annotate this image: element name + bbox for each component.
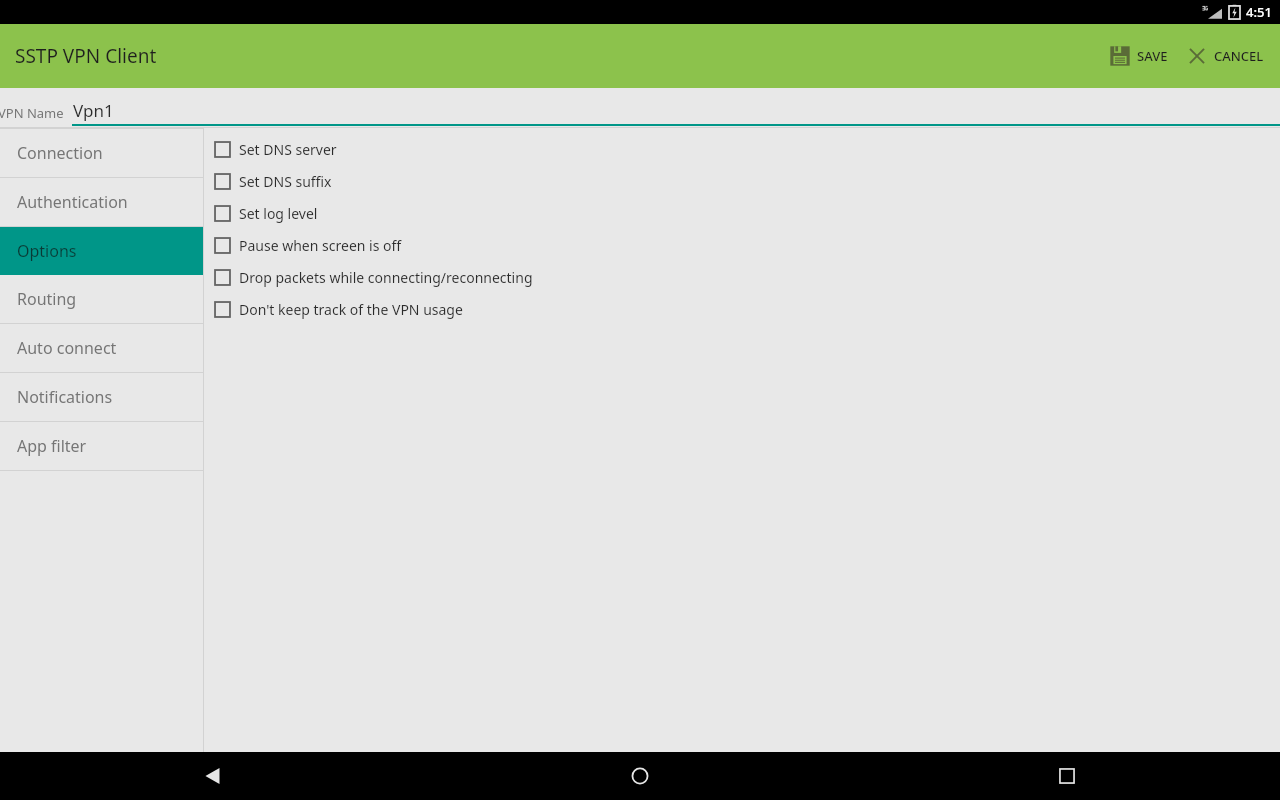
- button[interactable]: Set DNS suffix: [214, 165, 332, 197]
- staticText: CANCEL: [1214, 47, 1264, 65]
- button[interactable]: Home: [616, 752, 664, 800]
- button[interactable]: Don't keep track of the VPN usage: [214, 293, 463, 325]
- button[interactable]: Auto connect: [0, 324, 203, 372]
- staticText: VPN Name: [0, 104, 64, 122]
- staticText: Pause when screen is off: [239, 236, 402, 255]
- staticText: Routing: [17, 288, 77, 310]
- staticText: Options: [17, 240, 77, 262]
- button[interactable]: Back: [189, 752, 237, 800]
- button[interactable]: Set log level: [214, 197, 318, 229]
- staticText: Set DNS server: [239, 140, 337, 159]
- staticText: Auto connect: [17, 337, 117, 359]
- button[interactable]: Drop packets while connecting/reconnecti…: [214, 261, 533, 293]
- staticText: SAVE: [1137, 47, 1168, 65]
- button[interactable]: Save: [1101, 37, 1176, 75]
- button[interactable]: Recent apps: [1043, 752, 1091, 800]
- staticText: SSTP VPN Client: [15, 43, 157, 69]
- staticText: Set DNS suffix: [239, 172, 332, 191]
- button[interactable]: Notifications: [0, 373, 203, 421]
- staticText: Set log level: [239, 204, 318, 223]
- staticText: Notifications: [17, 386, 113, 408]
- button[interactable]: Cancel: [1178, 37, 1272, 75]
- staticText: Don't keep track of the VPN usage: [239, 300, 463, 319]
- button[interactable]: Routing: [0, 275, 203, 323]
- other: Save: [1109, 45, 1131, 67]
- staticText: Drop packets while connecting/reconnecti…: [239, 268, 533, 287]
- staticText: 4:51: [1246, 3, 1272, 21]
- staticText: Vpn1: [73, 99, 114, 122]
- staticText: Connection: [17, 142, 103, 164]
- button[interactable]: Options: [0, 227, 203, 275]
- staticText: Authentication: [17, 191, 128, 213]
- button[interactable]: Set DNS server: [214, 133, 337, 165]
- staticText: App filter: [17, 435, 87, 457]
- button[interactable]: Connection: [0, 129, 203, 177]
- button[interactable]: App filter: [0, 422, 203, 470]
- button[interactable]: Pause when screen is off: [214, 229, 402, 261]
- other: Cancel: [1186, 45, 1208, 67]
- button[interactable]: Authentication: [0, 178, 203, 226]
